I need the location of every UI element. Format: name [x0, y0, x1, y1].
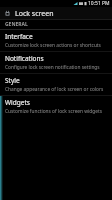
staticText: Style: [5, 76, 20, 85]
staticText: Notifications: [5, 54, 44, 63]
staticText: Configure lock screen notification setti…: [5, 64, 100, 71]
button[interactable]: Style: [0, 74, 112, 95]
staticText: Change appearance of lock screen or colo…: [5, 86, 104, 93]
button[interactable]: Widgets: [0, 96, 112, 200]
button[interactable]: Navigate up: [3, 9, 12, 18]
staticText: Lock screen: [15, 9, 54, 19]
staticText: Widgets: [5, 98, 30, 107]
button[interactable]: Interface: [0, 30, 112, 51]
staticText: 10:51 PM: [88, 0, 110, 7]
staticText: Customize functions of lock screen widge…: [5, 108, 102, 115]
staticText: Interface: [5, 32, 33, 41]
staticText: Customize lock screen actions or shortcu…: [5, 42, 101, 49]
button[interactable]: Notifications: [0, 52, 112, 73]
staticText: GENERAL: [5, 21, 28, 28]
